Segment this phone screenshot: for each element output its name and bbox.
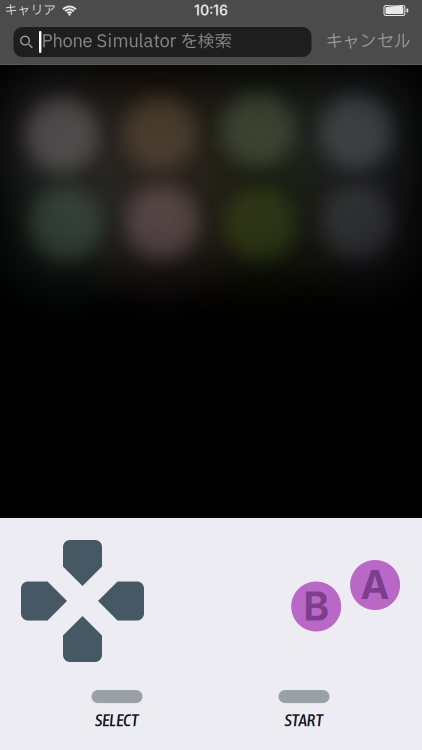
staticText: 10:16 <box>194 2 228 19</box>
button[interactable]: A <box>350 560 400 610</box>
staticText: Phone Simulator を検索 <box>41 29 231 55</box>
staticText: SELECT <box>95 710 139 730</box>
button[interactable]: SELECT <box>91 690 142 730</box>
button[interactable]: Up <box>63 540 102 586</box>
staticText: キャンセル <box>325 29 410 55</box>
button[interactable]: キャンセル <box>322 25 414 59</box>
staticText: START <box>284 710 323 730</box>
button[interactable]: START <box>278 690 329 730</box>
button[interactable]: Down <box>63 616 102 662</box>
button[interactable]: Left <box>21 581 67 620</box>
staticText: B <box>304 583 329 630</box>
button[interactable]: B <box>291 581 341 631</box>
staticText: キャリア <box>4 1 56 20</box>
staticText: A <box>361 562 389 608</box>
button[interactable]: Right <box>98 581 144 620</box>
